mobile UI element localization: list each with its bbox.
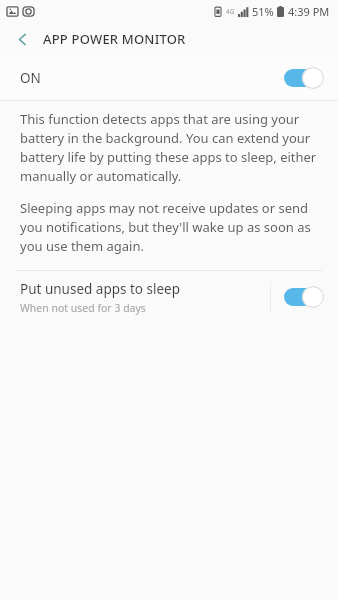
staticText: This function detects apps that are usin…	[20, 110, 320, 185]
staticText: ON	[20, 69, 41, 87]
button[interactable]: Put unused apps to sleep toggle	[284, 286, 324, 308]
staticText: When not used for 3 days	[20, 301, 146, 315]
button[interactable]: Toggle on	[284, 67, 324, 89]
staticText: 4G	[226, 7, 235, 16]
button[interactable]: Navigate up	[6, 23, 38, 55]
staticText: APP POWER MONITOR	[43, 30, 186, 48]
staticText: 4:39 PM	[288, 4, 330, 19]
button[interactable]: Put unused apps to sleep	[0, 271, 338, 323]
button[interactable]: Toggle on	[284, 286, 324, 308]
staticText: Put unused apps to sleep	[20, 280, 181, 298]
staticText: Sleeping apps may not receive updates or…	[20, 199, 320, 255]
staticText: 51%	[252, 4, 274, 19]
button[interactable]: ON	[0, 56, 338, 100]
